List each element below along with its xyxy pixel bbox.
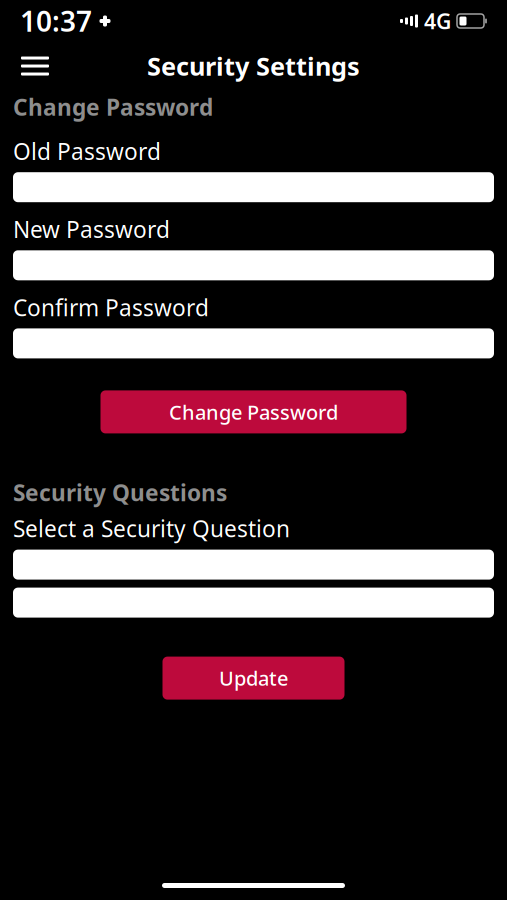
staticText: Change Password	[13, 92, 213, 122]
staticText: Old Password	[13, 136, 161, 166]
staticText: Update	[219, 665, 288, 691]
staticText: New Password	[13, 214, 170, 244]
button[interactable]: Change Password	[100, 390, 406, 433]
button[interactable]: Update	[162, 657, 344, 700]
staticText: Security Questions	[13, 477, 227, 507]
button[interactable]: Old Password	[13, 172, 494, 202]
staticText: 10:37	[20, 2, 92, 40]
button[interactable]: Confirm Password	[13, 328, 494, 358]
staticText: Confirm Password	[13, 292, 209, 322]
staticText: Change Password	[169, 399, 338, 425]
staticText: 4G	[424, 7, 451, 35]
button[interactable]: Menu	[12, 44, 58, 88]
staticText: Security Settings	[147, 49, 360, 83]
button[interactable]: New Password	[13, 250, 494, 280]
button[interactable]: Security answer	[13, 588, 494, 618]
staticText: Select a Security Question	[13, 513, 290, 544]
button[interactable]: Select a Security Question	[13, 550, 494, 580]
